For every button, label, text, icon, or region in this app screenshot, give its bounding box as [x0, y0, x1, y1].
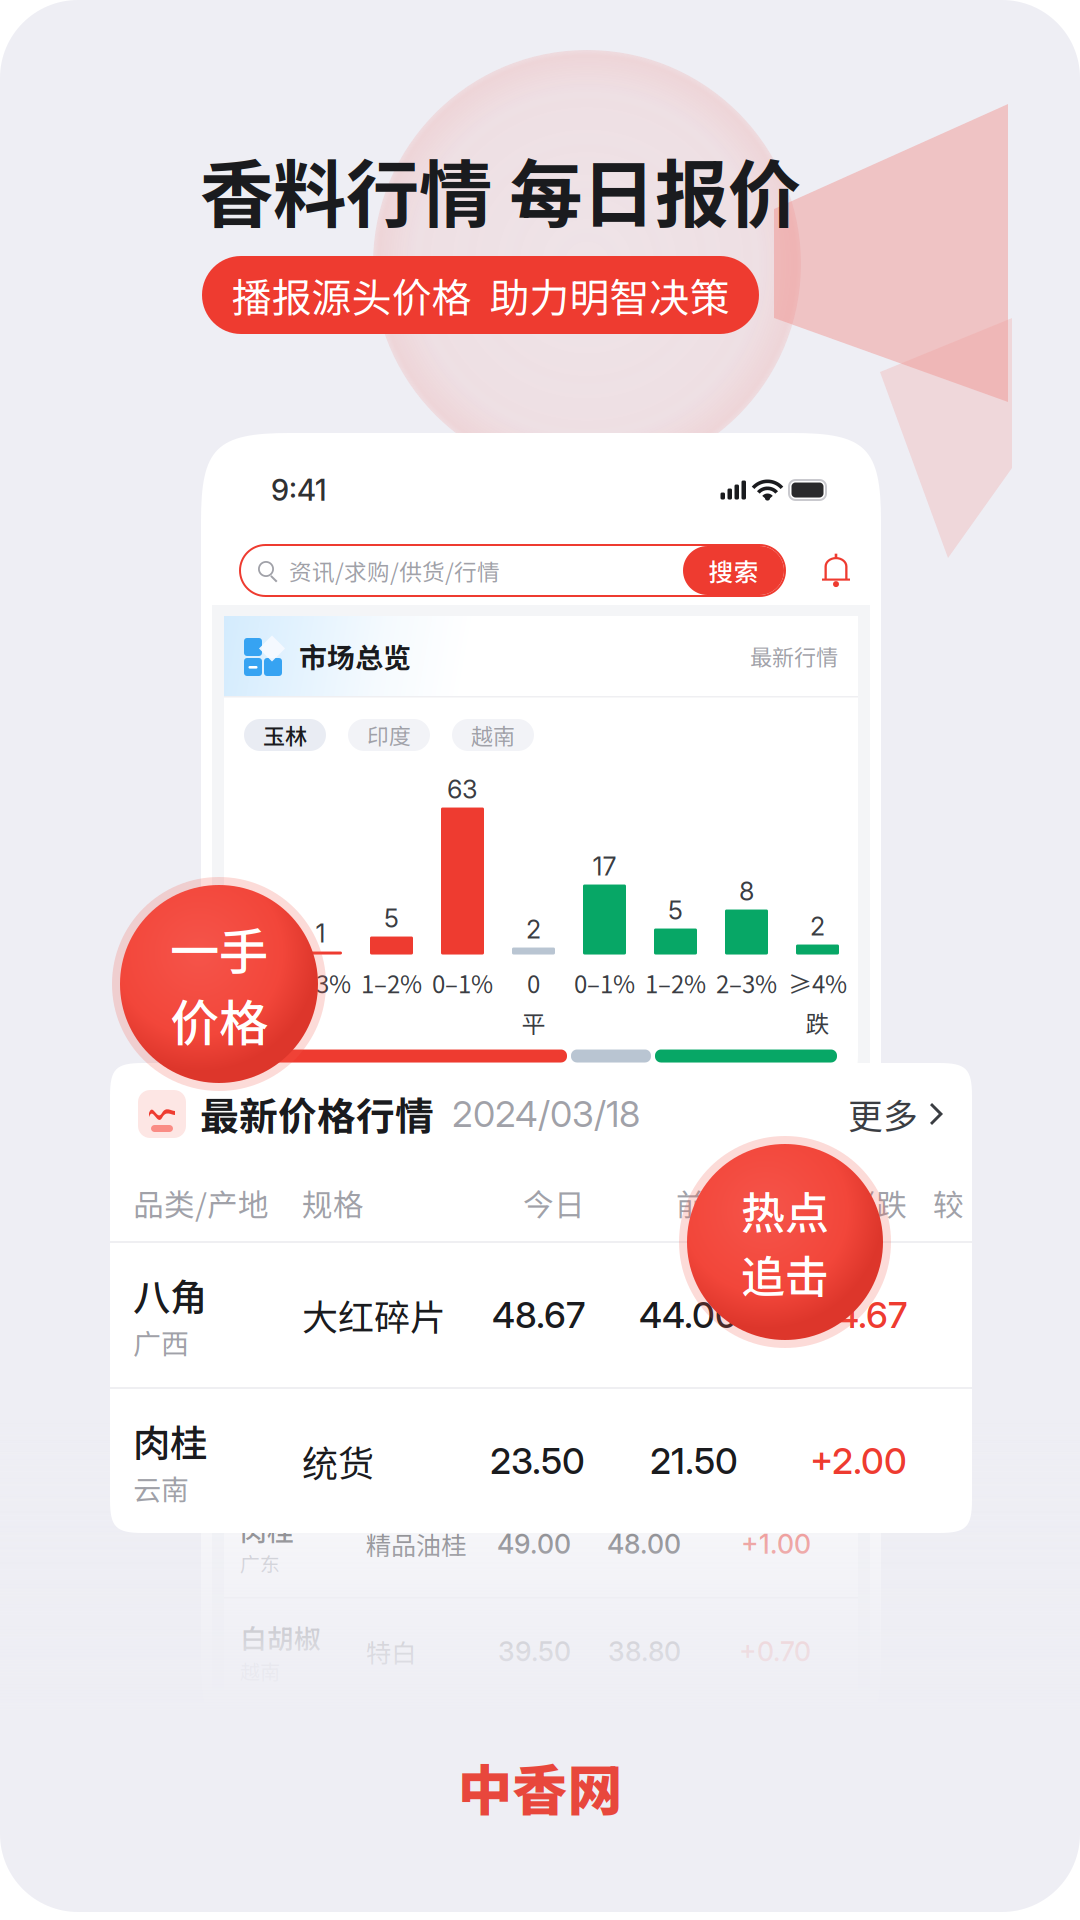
staticText: 2–3%: [290, 965, 351, 1000]
staticText: 2024/03/18: [452, 1092, 640, 1136]
staticText: 前日: [676, 1181, 738, 1225]
button[interactable]: 玉林: [244, 719, 326, 751]
staticText: +0.70: [739, 1635, 811, 1668]
button[interactable]: 印度: [348, 719, 430, 751]
staticText: 2: [526, 914, 541, 944]
button[interactable]: 八角: [110, 1243, 972, 1387]
staticText: 0–1%: [432, 965, 493, 1000]
staticText: 平: [521, 1005, 545, 1040]
staticText: 44.00: [607, 1313, 681, 1345]
button[interactable]: 搜索: [683, 546, 784, 595]
staticText: 规格: [366, 1230, 412, 1263]
staticText: 特白: [366, 1633, 416, 1670]
staticText: 更多: [780, 1160, 838, 1203]
staticText: 0: [527, 965, 540, 1000]
staticText: +1.00: [741, 1528, 811, 1560]
staticText: 白胡椒: [240, 1618, 321, 1656]
staticText: 前日: [635, 1230, 681, 1263]
staticText: 大红碎片: [302, 1289, 446, 1341]
staticText: 21.50: [650, 1439, 738, 1483]
staticText: 48.67: [500, 1313, 571, 1345]
staticText: 最新价格行情: [200, 1086, 434, 1142]
staticText: 中香网: [457, 1747, 622, 1826]
staticText: 播报源头价格 助力明智决策: [231, 266, 729, 324]
staticText: 23.50: [499, 1420, 571, 1453]
staticText: 21.50: [614, 1420, 681, 1453]
staticText: 越南: [471, 719, 515, 751]
staticText: 较: [933, 1181, 964, 1225]
staticText: 63: [447, 774, 478, 804]
staticText: 资讯/求购/供货/行情: [289, 554, 500, 587]
staticText: 8: [739, 876, 754, 906]
staticText: 印度: [367, 719, 411, 751]
staticText: 广东: [240, 1549, 280, 1578]
staticText: 今日: [525, 1230, 571, 1263]
staticText: 0–1%: [574, 965, 635, 1000]
button[interactable]: 更多: [848, 1089, 944, 1139]
staticText: 品类/产地: [133, 1181, 269, 1225]
staticText: 2024/03/18: [498, 1163, 661, 1200]
staticText: 云南: [133, 1468, 189, 1508]
staticText: 49.00: [497, 1528, 571, 1560]
staticText: 2–3%: [716, 965, 777, 1000]
staticText: 5: [384, 903, 399, 933]
staticText: +2.00: [810, 1439, 907, 1483]
staticText: 1–2%: [361, 965, 422, 1000]
staticText: 一手 价格: [170, 913, 268, 1055]
staticText: 最新价格行情: [288, 1157, 486, 1206]
staticText: 广西: [133, 1322, 189, 1362]
button[interactable]: 越南: [452, 719, 534, 751]
staticText: 规格: [302, 1181, 364, 1225]
staticText: 涨跌: [845, 1181, 907, 1225]
staticText: 更多: [848, 1089, 918, 1139]
staticText: 39.50: [498, 1635, 571, 1668]
staticText: 今日: [523, 1181, 585, 1225]
staticText: 香料行情 每日报价: [200, 136, 801, 242]
staticText: 市场总览: [299, 636, 411, 676]
staticText: 统货: [302, 1435, 374, 1487]
staticText: 八角: [133, 1268, 207, 1322]
staticText: 搜索: [708, 553, 758, 588]
staticText: 统货: [366, 1418, 416, 1455]
staticText: 9:41: [271, 472, 327, 508]
staticText: +4.67: [813, 1293, 907, 1337]
button[interactable]: 肉桂: [110, 1389, 972, 1533]
staticText: 精品油桂: [366, 1526, 466, 1562]
button[interactable]: 通知: [818, 551, 853, 589]
staticText: 38.80: [608, 1635, 681, 1668]
staticText: 热点 追击: [741, 1178, 829, 1306]
staticText: 23.50: [490, 1439, 585, 1483]
staticText: 1–2%: [645, 965, 706, 1000]
staticText: 大红碎片: [366, 1311, 466, 1347]
staticText: +4.67: [739, 1313, 811, 1345]
staticText: 涨跌: [765, 1230, 811, 1263]
staticText: 5: [668, 895, 683, 925]
staticText: 最新行情: [750, 640, 838, 672]
staticText: 1: [315, 918, 325, 948]
staticText: 肉桂: [133, 1414, 207, 1468]
staticText: 48.67: [492, 1293, 585, 1337]
staticText: 肉桂: [240, 1510, 294, 1549]
staticText: ≥4%: [788, 965, 847, 1000]
staticText: 44.00: [639, 1293, 738, 1337]
staticText: 48.00: [607, 1528, 681, 1560]
staticText: 跌: [805, 1005, 829, 1040]
staticText: 17: [592, 851, 616, 881]
staticText: 玉林: [263, 719, 307, 751]
staticText: 2: [810, 911, 825, 941]
staticText: 品类/产地: [240, 1230, 341, 1263]
